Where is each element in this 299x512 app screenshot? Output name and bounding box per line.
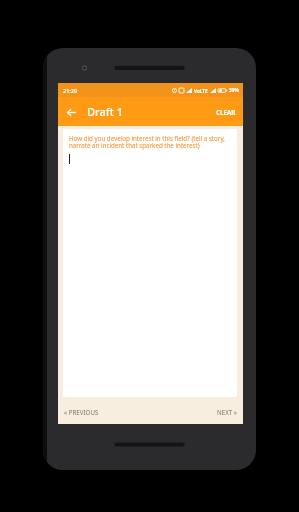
button[interactable]: Back xyxy=(61,102,81,122)
staticText: CLEAR xyxy=(216,108,236,116)
button[interactable]: « PREVIOUS xyxy=(58,400,105,424)
button[interactable]: CLEAR xyxy=(209,97,243,126)
staticText: How did you develop interest in this fie… xyxy=(69,134,231,150)
staticText: Draft 1 xyxy=(87,104,124,119)
staticText: VoLTE xyxy=(194,88,208,94)
button[interactable]: How did you develop interest in this fie… xyxy=(63,129,237,397)
button[interactable]: NEXT » xyxy=(211,400,243,424)
staticText: 21:29 xyxy=(63,87,78,94)
staticText: « PREVIOUS xyxy=(64,408,99,416)
staticText: NEXT » xyxy=(217,408,237,416)
staticText: 39% xyxy=(229,87,239,94)
